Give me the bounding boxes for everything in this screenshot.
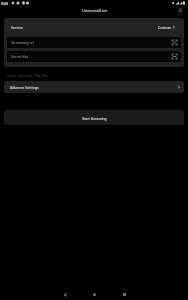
staticText: Service [11, 25, 23, 30]
staticText: Secret Key [11, 54, 29, 59]
button[interactable]: Advance Settings [4, 81, 184, 93]
button[interactable]: Back [59, 289, 70, 300]
button[interactable]: Secret Key [7, 51, 181, 62]
staticText: Advance Settings [10, 85, 39, 90]
staticText: 9:04 [1, 1, 8, 6]
staticText: Start Streaming [82, 116, 107, 120]
button[interactable]: Account [176, 6, 184, 14]
button[interactable]: Start Streaming [4, 110, 184, 125]
button[interactable]: Streaming url [7, 37, 181, 48]
staticText: Current Setting: auto, 720p, 30fps [7, 74, 49, 78]
button[interactable]: Scan [170, 52, 179, 61]
staticText: Custom [158, 25, 172, 30]
button[interactable]: Recents [119, 289, 130, 300]
button[interactable]: Scan [170, 38, 179, 47]
staticText: Streaming url [11, 40, 35, 45]
button[interactable]: Home [89, 289, 100, 300]
staticText: UniversalLive [82, 8, 107, 13]
button[interactable]: Service [7, 20, 181, 34]
